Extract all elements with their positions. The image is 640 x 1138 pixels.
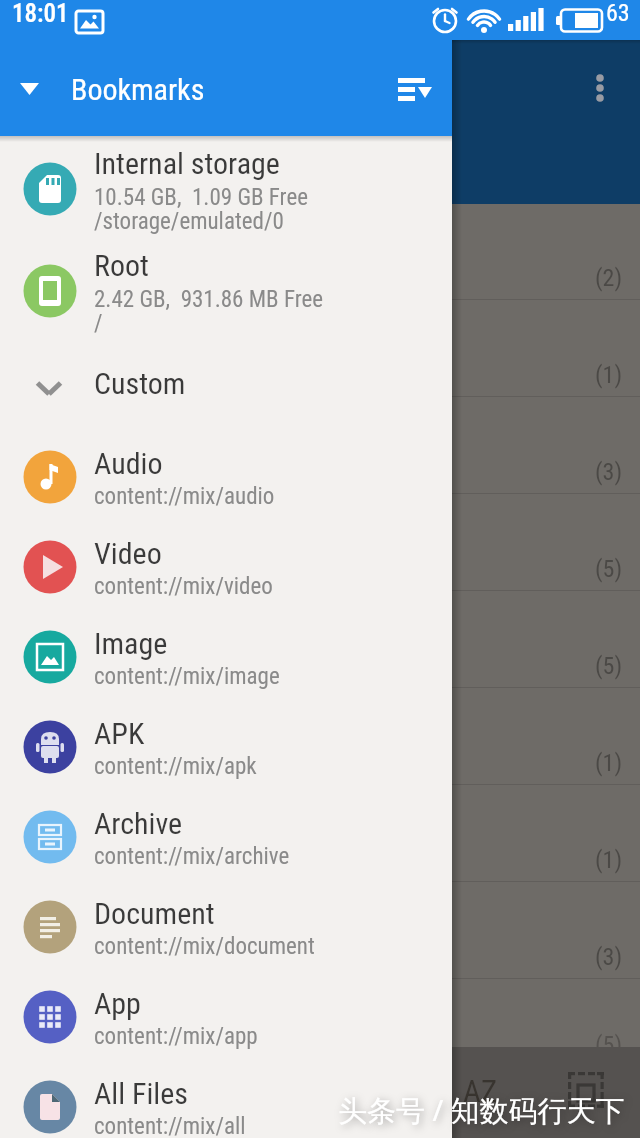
button[interactable]: Internal storage	[0, 135, 452, 237]
staticText: Video	[94, 536, 162, 571]
staticText: (5)	[595, 652, 623, 680]
staticText: content://mix/document	[94, 933, 315, 960]
staticText: Internal storage	[94, 146, 280, 181]
staticText: 10.54 GB, 1.09 GB Free	[94, 184, 308, 211]
staticText: content://mix/apk	[94, 753, 257, 780]
button[interactable]: App	[0, 972, 452, 1062]
staticText: (1)	[595, 361, 623, 389]
staticText: (2)	[595, 264, 623, 292]
staticText: content://mix/image	[94, 663, 280, 690]
button[interactable]: Bookmarks	[0, 40, 452, 136]
staticText: All Files	[94, 1076, 188, 1111]
button[interactable]	[0, 1047, 640, 1138]
staticText: 18:01	[12, 0, 69, 28]
staticText: Custom	[94, 366, 186, 401]
staticText: AZ	[463, 1073, 498, 1109]
staticText: (1)	[595, 846, 623, 874]
button[interactable]: Root	[0, 237, 452, 339]
staticText: Archive	[94, 806, 183, 841]
button[interactable]: Archive	[0, 792, 452, 882]
staticText: (1)	[595, 749, 623, 777]
staticText: (5)	[595, 1031, 623, 1059]
staticText: Document	[94, 896, 215, 931]
staticText: (3)	[595, 458, 623, 486]
staticText: 头条号 / 知数码行天下	[338, 1090, 625, 1130]
staticText: /storage/emulated/0	[94, 208, 284, 235]
staticText: Image	[94, 626, 168, 661]
staticText: (5)	[595, 555, 623, 583]
button[interactable]: Image	[0, 612, 452, 702]
button[interactable]	[566, 1070, 606, 1110]
staticText: 63	[606, 0, 630, 27]
staticText: 2.42 GB, 931.86 MB Free	[94, 286, 324, 313]
staticText: Audio	[94, 446, 163, 481]
button[interactable]: All Files	[0, 1062, 452, 1138]
staticText: content://mix/app	[94, 1023, 258, 1050]
staticText: /	[94, 310, 103, 337]
button[interactable]: APK	[0, 702, 452, 792]
staticText: (3)	[595, 943, 623, 971]
staticText: content://mix/archive	[94, 843, 290, 870]
button[interactable]: Document	[0, 882, 452, 972]
button[interactable]: Video	[0, 522, 452, 612]
staticText: Bookmarks	[71, 72, 205, 107]
button[interactable]: Custom	[0, 363, 452, 413]
staticText: content://mix/all	[94, 1113, 246, 1138]
staticText: content://mix/video	[94, 573, 273, 600]
staticText: content://mix/audio	[94, 483, 275, 510]
staticText: App	[94, 986, 141, 1021]
staticText: APK	[94, 716, 145, 751]
staticText: Root	[94, 248, 149, 283]
button[interactable]: Audio	[0, 432, 452, 522]
button[interactable]	[392, 76, 436, 120]
